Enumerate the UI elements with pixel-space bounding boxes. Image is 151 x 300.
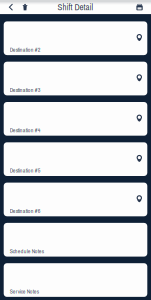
button[interactable]: Delete (18, 0, 32, 14)
button[interactable]: Destination #4 (4, 102, 147, 136)
staticText: Destination #5 (10, 167, 41, 174)
staticText: Shift Detail (57, 1, 93, 13)
button[interactable]: Destination #5 (4, 142, 147, 176)
staticText: Destination #4 (10, 126, 41, 134)
button[interactable]: Destination #2 (4, 21, 147, 55)
button[interactable]: Back (4, 0, 18, 14)
button[interactable]: Destination #6 (4, 183, 147, 216)
staticText: Service Notes (10, 288, 39, 295)
button[interactable]: Schedule Notes (4, 223, 147, 257)
staticText: Destination #6 (10, 207, 41, 215)
button[interactable]: Save (132, 1, 147, 14)
button[interactable]: Destination #3 (4, 62, 147, 95)
button[interactable]: Service Notes (4, 263, 147, 297)
staticText: Destination #2 (10, 46, 41, 53)
staticText: Schedule Notes (10, 247, 44, 255)
staticText: Destination #3 (10, 86, 41, 94)
